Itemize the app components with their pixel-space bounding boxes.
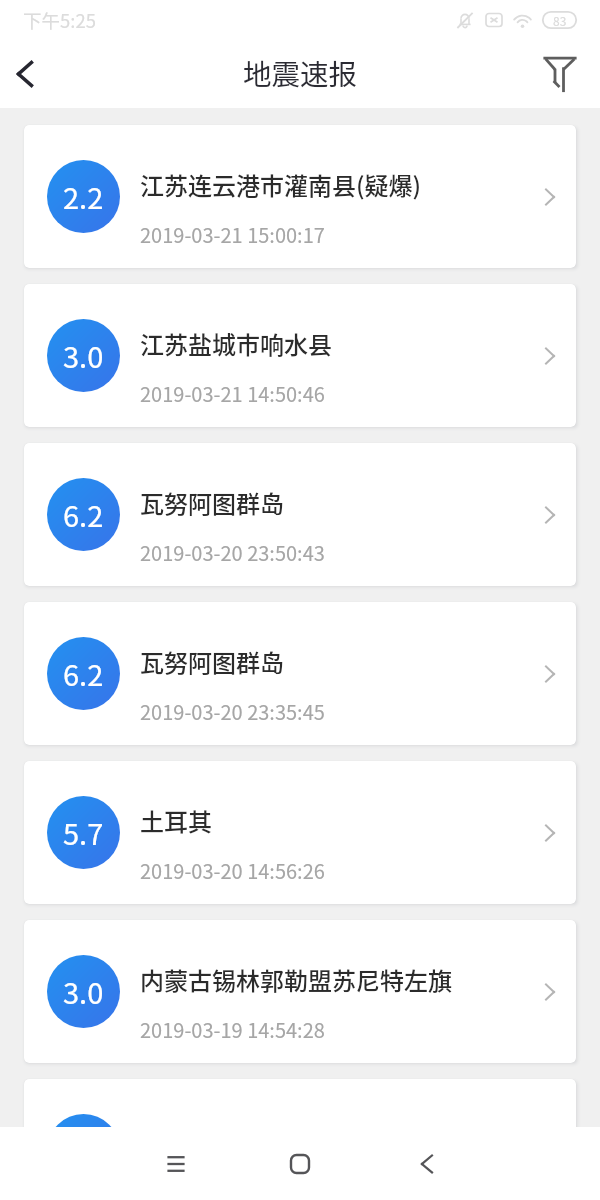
- staticText: 江苏盐城市响水县: [140, 326, 332, 361]
- staticText: 6.2: [63, 652, 104, 694]
- staticText: 3.0: [63, 334, 104, 376]
- button[interactable]: 6.2: [24, 602, 576, 745]
- staticText: 3.0: [63, 970, 104, 1012]
- staticText: 2019-03-20 14:56:26: [140, 856, 325, 885]
- staticText: 下午5:25: [23, 7, 96, 34]
- staticText: 2019-03-21 15:00:17: [140, 220, 325, 249]
- staticText: 2019-03-20 23:35:45: [140, 697, 325, 726]
- staticText: 2.2: [63, 175, 104, 217]
- staticText: 5.7: [63, 811, 104, 853]
- staticText: 土耳其: [140, 803, 212, 838]
- staticText: 2019-03-20 23:50:43: [140, 538, 325, 567]
- staticText: 2019-03-21 14:50:46: [140, 379, 325, 408]
- button[interactable]: 2.2: [24, 125, 576, 268]
- button[interactable]: 3.0: [24, 284, 576, 427]
- staticText: 地震速报: [243, 52, 358, 93]
- staticText: 江苏连云港市灌南县(疑爆): [140, 167, 422, 202]
- button[interactable]: Home: [265, 1127, 334, 1200]
- button[interactable]: Back: [1, 50, 48, 98]
- staticText: 内蒙古锡林郭勒盟苏尼特左旗: [140, 962, 452, 997]
- button[interactable]: Recents: [141, 1127, 210, 1200]
- button[interactable]: 6.2: [24, 443, 576, 586]
- staticText: 83: [553, 12, 567, 29]
- button[interactable]: 4.1: [24, 1079, 576, 1127]
- button[interactable]: Back: [392, 1127, 461, 1200]
- button[interactable]: 3.0: [24, 920, 576, 1063]
- staticText: 瓦努阿图群岛: [140, 485, 284, 520]
- staticText: 2019-03-19 14:54:28: [140, 1015, 325, 1044]
- button[interactable]: Filter: [532, 46, 588, 102]
- button[interactable]: 5.7: [24, 761, 576, 904]
- staticText: 瓦努阿图群岛: [140, 644, 284, 679]
- staticText: 6.2: [63, 493, 104, 535]
